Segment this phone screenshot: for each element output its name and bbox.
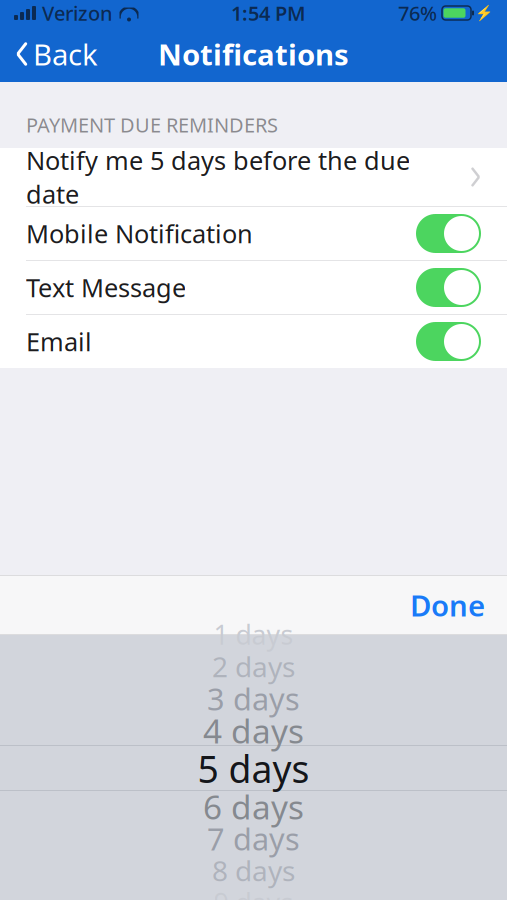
staticText: Text Message <box>26 271 186 304</box>
button[interactable]: Mobile Notification <box>0 207 507 260</box>
staticText: 1 days <box>213 617 293 652</box>
staticText: Done <box>410 585 485 624</box>
staticText: 4 days <box>203 708 304 753</box>
staticText: 6 days <box>203 784 304 829</box>
button[interactable]: Done <box>388 575 507 635</box>
staticText: ⚡ <box>475 5 493 21</box>
button[interactable]: Text Message <box>0 261 507 314</box>
staticText: 9 days <box>213 885 293 900</box>
staticText: Mobile Notification <box>26 217 253 250</box>
staticText: 3 days <box>207 678 300 719</box>
staticText: Back <box>33 34 98 73</box>
staticText: 8 days <box>212 852 295 889</box>
staticText: Notifications <box>158 34 349 73</box>
button[interactable]: Notify me 5 days before the due date <box>0 148 507 206</box>
button[interactable]: Email <box>0 315 507 368</box>
staticText: Verizon <box>42 0 113 26</box>
staticText: PAYMENT DUE REMINDERS <box>26 111 278 138</box>
staticText: 7 days <box>207 818 300 859</box>
staticText: Email <box>26 325 92 358</box>
staticText: 1:54 PM <box>231 0 306 26</box>
staticText: 5 days <box>197 744 309 793</box>
staticText: Notify me 5 days before the due date <box>26 143 410 211</box>
staticText: 76% <box>398 0 437 26</box>
button[interactable]: Back <box>0 26 114 82</box>
staticText: 2 days <box>212 648 295 685</box>
